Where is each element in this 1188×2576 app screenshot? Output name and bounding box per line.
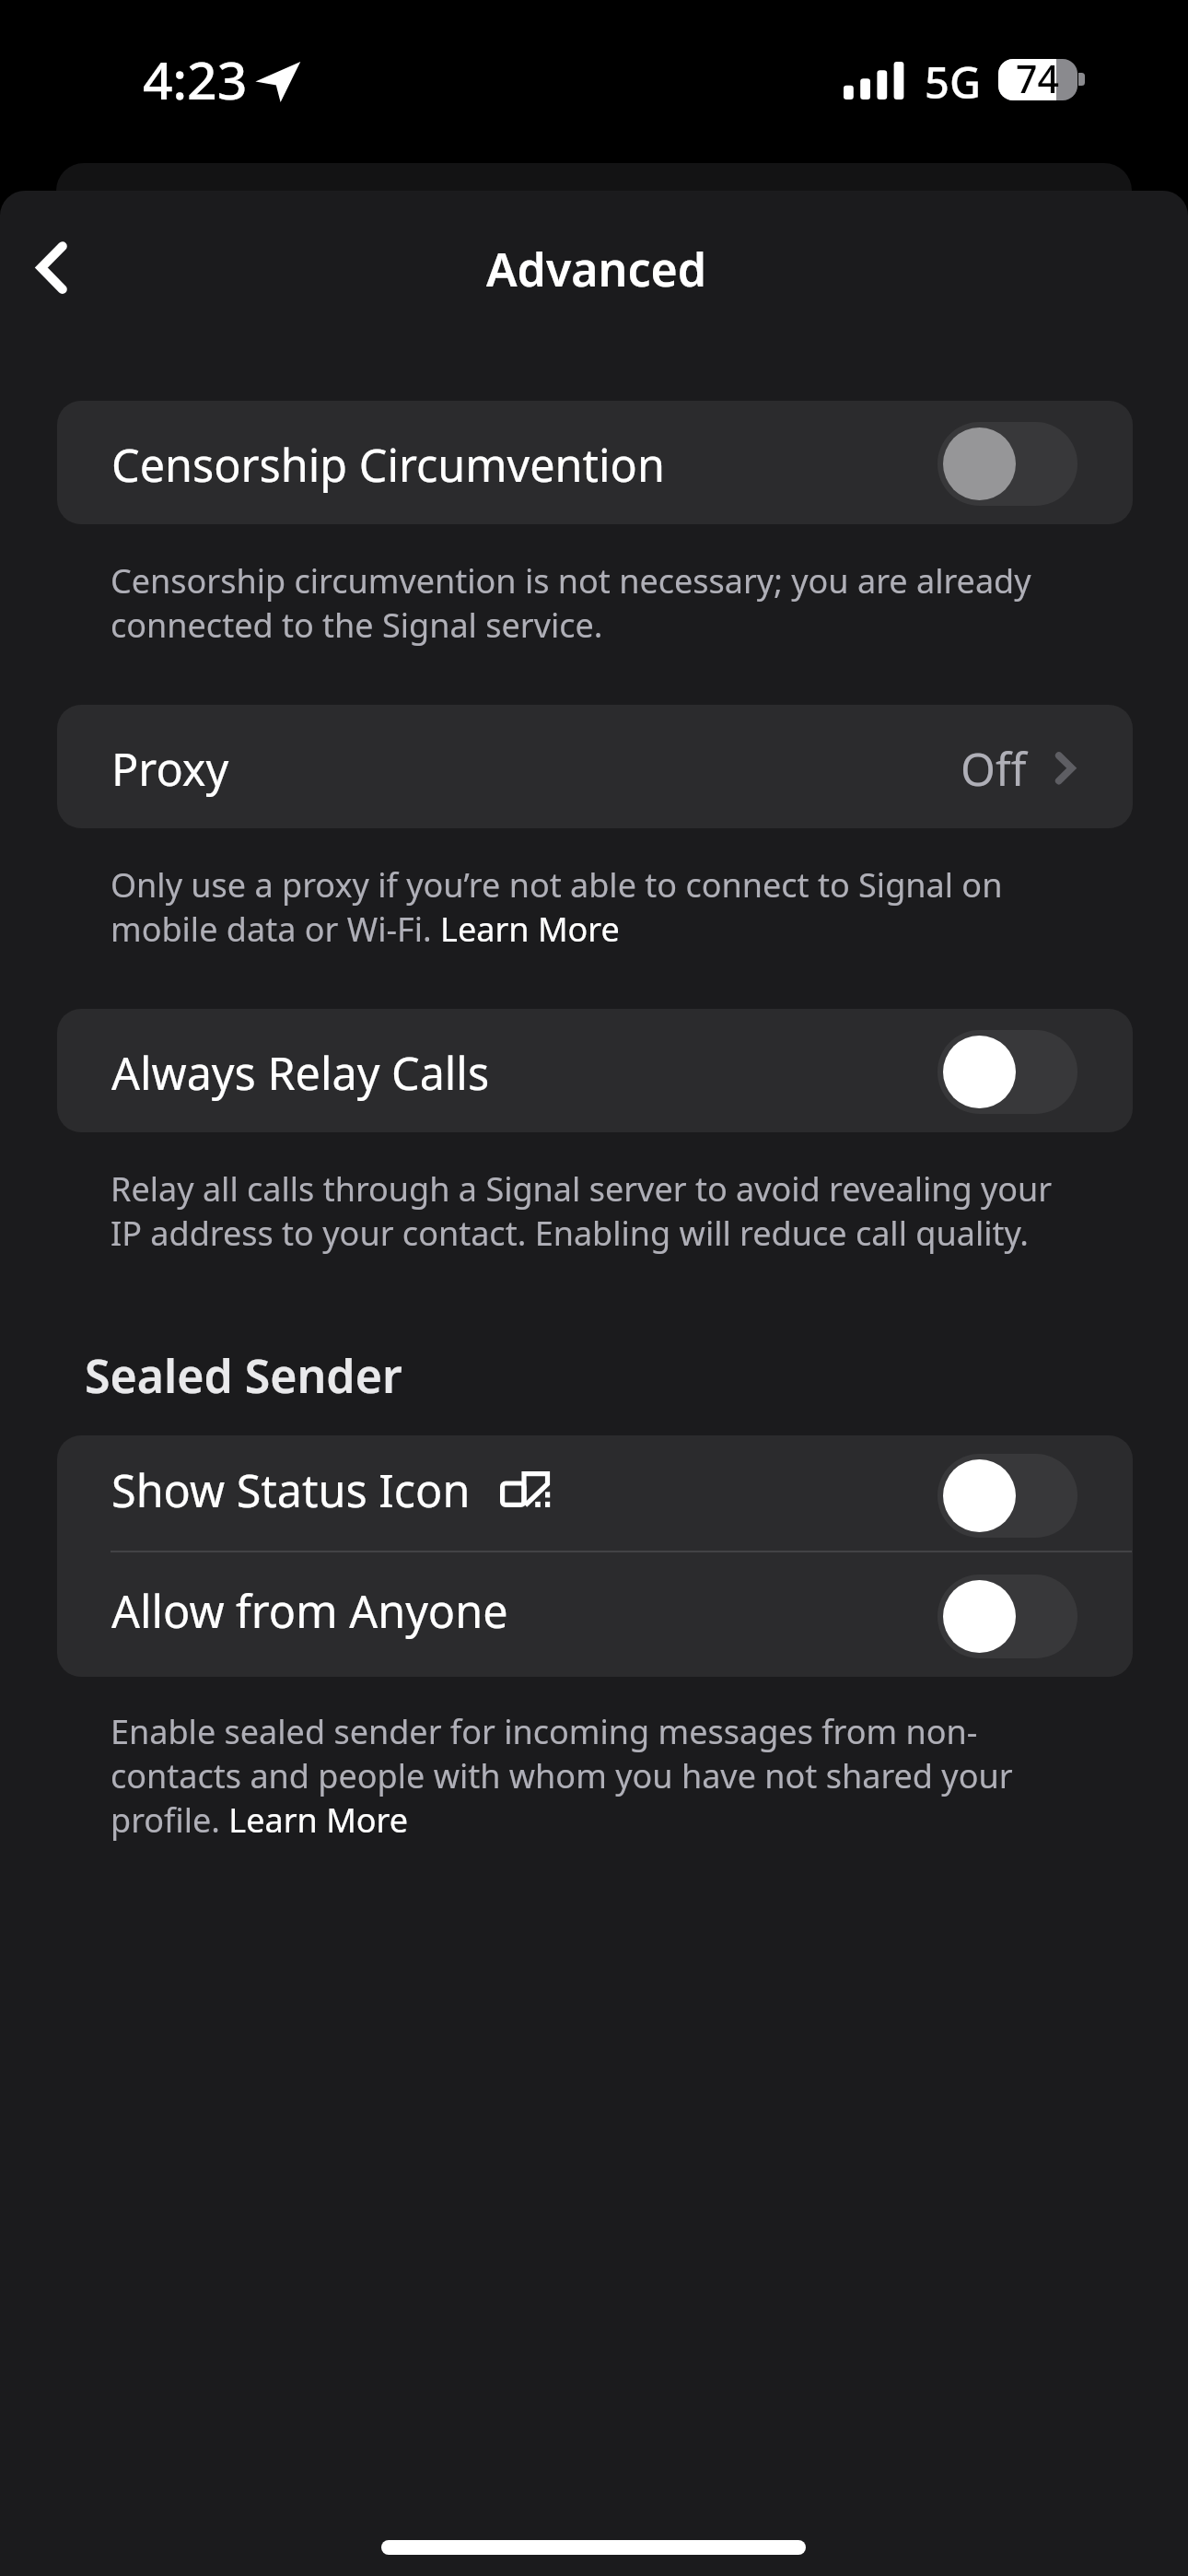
staticText: Enable sealed sender for incoming messag… — [111, 1710, 1073, 1843]
button[interactable]: Censorship Circumvention — [57, 401, 1133, 524]
button[interactable]: Allow from Anyone — [57, 1552, 1133, 1677]
button[interactable]: Show Status Icon — [57, 1435, 1133, 1551]
staticText: 74 — [1016, 53, 1059, 104]
button[interactable]: Proxy, Off — [57, 705, 1133, 828]
staticText: Censorship Circumvention — [111, 434, 665, 495]
staticText: 5G — [925, 53, 982, 111]
button[interactable]: Always Relay Calls — [57, 1009, 1133, 1132]
staticText: Proxy — [111, 738, 229, 799]
other: Sealed sender indicator — [497, 1469, 554, 1511]
staticText: 4:23 — [143, 43, 248, 115]
staticText: Sealed Sender — [85, 1344, 402, 1407]
button[interactable]: Toggle switch, off — [938, 1030, 1077, 1114]
staticText: Relay all calls through a Signal server … — [111, 1167, 1073, 1256]
button[interactable]: Open proxy settings — [1048, 743, 1083, 794]
button[interactable]: Toggle switch, off — [938, 1454, 1077, 1538]
staticText: Allow from Anyone — [111, 1580, 508, 1641]
staticText: Censorship circumvention is not necessar… — [111, 559, 1073, 648]
staticText: Advanced — [486, 238, 707, 300]
staticText: Show Status Icon — [111, 1459, 471, 1520]
button[interactable]: Toggle switch, off — [938, 422, 1077, 506]
button[interactable]: Back — [7, 223, 96, 313]
staticText: Always Relay Calls — [111, 1042, 490, 1103]
staticText: Off — [961, 738, 1027, 799]
staticText: Only use a proxy if you’re not able to c… — [111, 863, 1073, 952]
button[interactable]: Toggle switch, off — [938, 1575, 1077, 1658]
